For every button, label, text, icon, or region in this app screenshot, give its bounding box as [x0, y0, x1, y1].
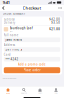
staticText: $21.00 — [49, 27, 60, 31]
button[interactable]: Add a promo code — [4, 63, 60, 66]
staticText: Search — [21, 92, 27, 94]
button[interactable]: Jamie Rivera — [4, 37, 60, 42]
staticText: Home — [6, 92, 10, 94]
staticText: Delivery — [4, 21, 15, 24]
staticText: Secure checkout — [3, 78, 16, 79]
staticText: Jamie Rivera — [5, 38, 21, 41]
button[interactable]: Search — [16, 87, 32, 95]
staticText: Place order — [23, 68, 40, 72]
button[interactable]: Place order — [4, 67, 60, 73]
button[interactable]: More options — [56, 5, 64, 11]
staticText: Address — [4, 43, 15, 47]
button[interactable]: Back — [0, 5, 7, 11]
staticText: Sourdough Loaf — [10, 26, 33, 30]
staticText: 9:41 — [3, 0, 10, 5]
staticText: $3.50 — [51, 21, 60, 24]
staticText: $42.00 — [49, 18, 60, 21]
staticText: Full name — [4, 33, 19, 37]
staticText: Card — [4, 53, 11, 56]
staticText: You — [54, 92, 57, 94]
button[interactable]: You — [48, 87, 64, 95]
staticText: Add a promo code — [18, 63, 46, 66]
staticText: 241 Pine St — [5, 48, 22, 51]
staticText: Cart — [38, 92, 41, 94]
staticText: Checkout — [22, 5, 41, 11]
button[interactable]: Cart — [32, 87, 48, 95]
staticText: Qty 2 — [10, 30, 13, 32]
button[interactable]: •••• 4242 — [4, 57, 60, 61]
staticText: ORDER SUMMARY — [3, 12, 26, 15]
staticText: Subtotal — [4, 18, 15, 21]
button[interactable]: 241 Pine St — [4, 47, 60, 52]
staticText: •••• 4242 — [5, 57, 18, 61]
button[interactable]: Home — [0, 87, 16, 95]
